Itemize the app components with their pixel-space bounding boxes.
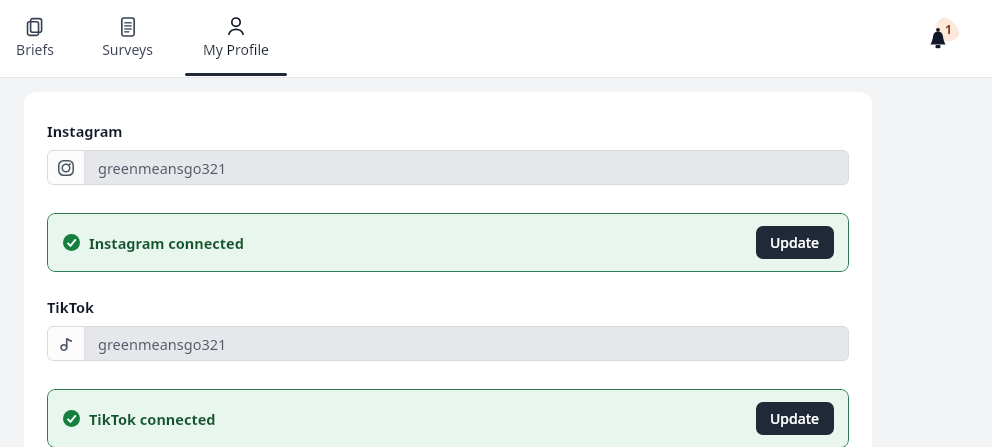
button[interactable]: greenmeansgo321: [47, 150, 849, 185]
staticText: Update: [770, 409, 820, 428]
button[interactable]: Update: [756, 402, 834, 435]
staticText: TikTok: [47, 297, 95, 317]
button[interactable]: Update: [756, 226, 834, 259]
staticText: My Profile: [203, 40, 269, 59]
staticText: greenmeansgo321: [98, 334, 227, 354]
button[interactable]: My Profile: [185, 0, 287, 78]
staticText: Briefs: [16, 40, 54, 59]
staticText: Surveys: [102, 40, 153, 59]
staticText: Instagram connected: [89, 233, 244, 253]
staticText: 1: [945, 21, 952, 37]
button[interactable]: Briefs: [0, 0, 86, 78]
staticText: TikTok connected: [89, 409, 216, 429]
button[interactable]: greenmeansgo321: [47, 326, 849, 361]
staticText: Instagram: [47, 121, 123, 141]
button[interactable]: Notifications: [916, 16, 960, 60]
staticText: greenmeansgo321: [98, 158, 227, 178]
staticText: Update: [770, 233, 820, 252]
button[interactable]: Surveys: [76, 0, 178, 78]
